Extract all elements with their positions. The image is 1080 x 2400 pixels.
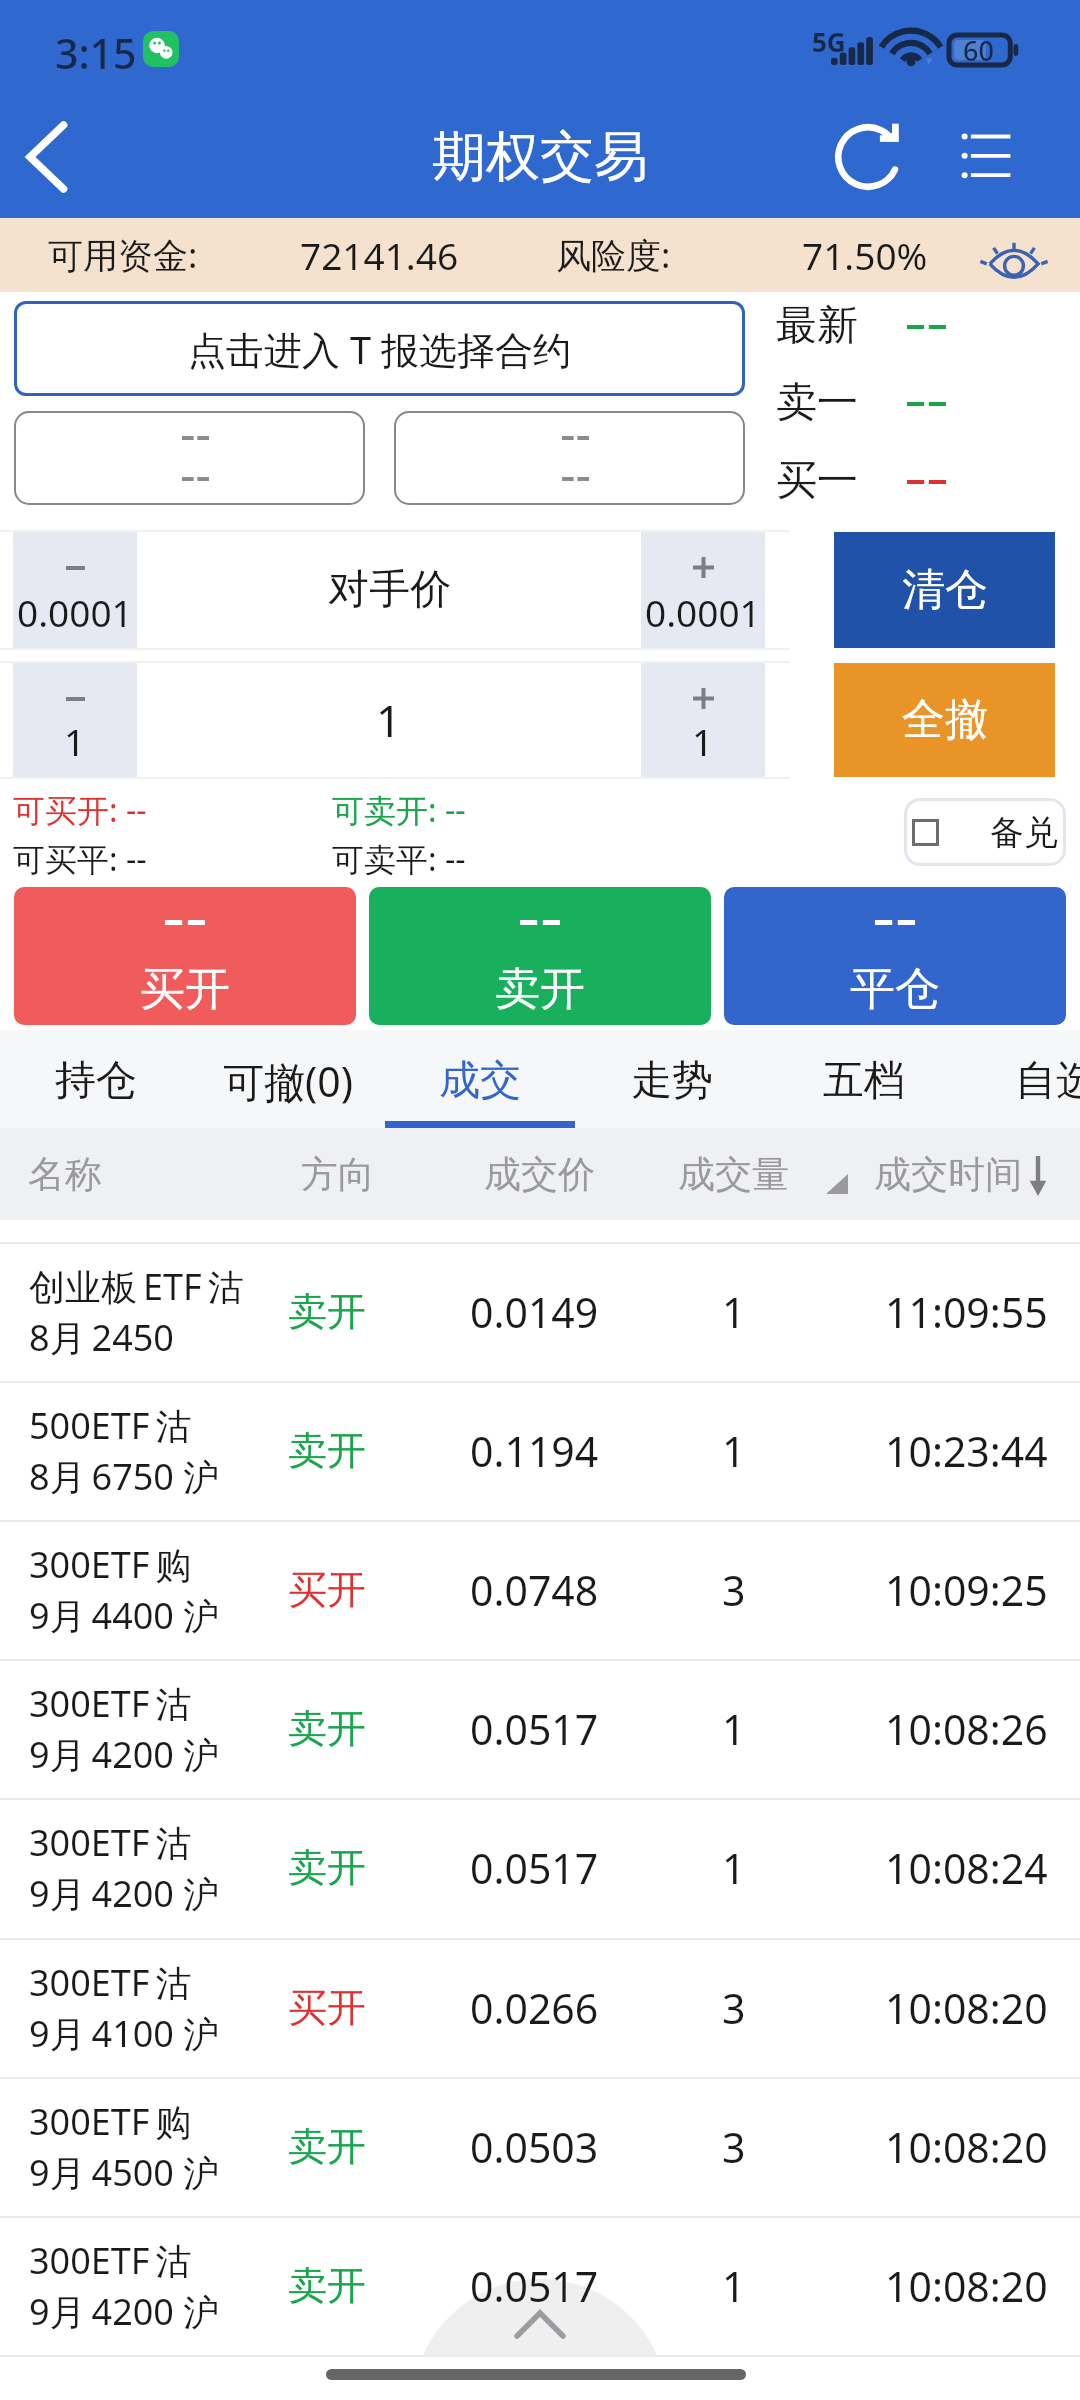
button[interactable]: 走势 [576, 1030, 768, 1128]
staticText: 走势 [631, 1055, 713, 1107]
staticText: 0.0266 [470, 1980, 599, 2036]
staticText: 9月 4400 沪 [29, 1591, 220, 1640]
button[interactable]: 自选 [960, 1030, 1080, 1128]
staticText: 全撤 [902, 693, 988, 747]
staticText: 300ETF 购 [29, 2097, 192, 2146]
staticText: 名称 [28, 1151, 102, 1198]
staticText: 买开 [140, 961, 230, 1018]
staticText: 创业板 ETF 沽 [29, 1262, 244, 1311]
button[interactable]: 卖开 [369, 887, 711, 1025]
staticText: 1 [722, 1701, 746, 1757]
button[interactable]: 300ETF 购 [0, 1520, 1080, 1659]
staticText: 卖开 [288, 1843, 366, 1892]
button[interactable]: 备兑 [904, 798, 1066, 866]
button[interactable] [14, 411, 365, 505]
staticText: 0.0001 [645, 587, 761, 637]
staticText: 成交时间 [874, 1151, 1022, 1198]
staticText: 对手价 [328, 564, 451, 616]
button[interactable]: 300ETF 沽 [0, 2216, 1080, 2355]
staticText: 0.0149 [470, 1284, 599, 1340]
button[interactable]: 五档 [768, 1030, 960, 1128]
button[interactable]: 300ETF 沽 [0, 1798, 1080, 1937]
staticText: 10:08:20 [885, 1980, 1048, 2036]
button[interactable]: 500ETF 沽 [0, 1381, 1080, 1520]
staticText: 可买开: -- [13, 788, 147, 832]
button[interactable]: Menu [936, 104, 1042, 210]
staticText: 可买平: -- [13, 837, 147, 881]
button[interactable]: Back [0, 104, 106, 210]
staticText: 500ETF 沽 [29, 1401, 192, 1450]
staticText: 10:08:20 [885, 2119, 1048, 2175]
staticText: 3 [722, 1562, 746, 1618]
staticText: 9月 4500 沪 [29, 2148, 220, 2197]
staticText: 1 [722, 2258, 746, 2314]
staticText: 60 [963, 32, 994, 62]
button[interactable]: 持仓 [0, 1030, 192, 1128]
button[interactable]: 平仓 [724, 887, 1066, 1025]
staticText: 9月 4200 沪 [29, 1869, 220, 1918]
staticText: 1 [64, 716, 86, 766]
staticText: 成交 [439, 1055, 521, 1107]
staticText: 300ETF 沽 [29, 1818, 192, 1867]
button[interactable]: 成交 [384, 1030, 576, 1128]
button[interactable]: 买开 [14, 887, 356, 1025]
button[interactable]: 300ETF 沽 [0, 1938, 1080, 2077]
button[interactable]: Decrease [13, 532, 137, 648]
button[interactable]: 300ETF 购 [0, 2077, 1080, 2216]
button[interactable]: 300ETF 沽 [0, 1659, 1080, 1798]
staticText: 3:15 [55, 25, 137, 81]
button[interactable]: 创业板 ETF 沽 [0, 1242, 1080, 1381]
staticText: 1 [722, 1284, 746, 1340]
staticText: 点击进入 T 报选择合约 [188, 323, 571, 375]
button[interactable]: 可撤(0) [192, 1030, 384, 1128]
staticText: 0.1194 [470, 1423, 599, 1479]
staticText: 最新 [776, 300, 858, 352]
staticText: 5G [812, 24, 846, 59]
staticText: 卖开 [288, 1704, 366, 1753]
staticText: 持仓 [55, 1055, 137, 1107]
staticText: 1 [722, 1423, 746, 1479]
staticText: 五档 [823, 1055, 905, 1107]
button[interactable]: Increase [641, 663, 765, 777]
button[interactable]: Decrease [13, 663, 137, 777]
staticText: 300ETF 沽 [29, 1679, 192, 1728]
staticText: 9月 4200 沪 [29, 1730, 220, 1779]
staticText: 9月 4100 沪 [29, 2009, 220, 2058]
button[interactable]: Increase [641, 532, 765, 648]
staticText: 72141.46 [300, 230, 459, 280]
staticText: 71.50% [802, 230, 928, 280]
staticText: 8月 6750 沪 [29, 1452, 220, 1501]
button[interactable]: 点击进入 T 报选择合约 [14, 301, 745, 396]
button[interactable]: Toggle visibility [972, 219, 1056, 291]
staticText: 期权交易 [432, 123, 648, 191]
button[interactable]: 清仓 [834, 532, 1055, 648]
staticText: 卖开 [288, 1287, 366, 1336]
staticText: 可用资金: [48, 231, 198, 279]
staticText: 3 [722, 1980, 746, 2036]
staticText: 可卖开: -- [332, 788, 466, 832]
staticText: 买开 [288, 1565, 366, 1614]
staticText: 0.0503 [470, 2119, 599, 2175]
button[interactable]: Refresh [816, 104, 920, 208]
staticText: 卖开 [288, 2122, 366, 2171]
staticText: 1 [376, 690, 402, 750]
staticText: 卖开 [495, 961, 585, 1018]
staticText: 卖开 [288, 2261, 366, 2310]
staticText: 可卖平: -- [332, 837, 466, 881]
staticText: 风险度: [556, 231, 671, 279]
staticText: 0.0517 [470, 1701, 599, 1757]
staticText: 300ETF 沽 [29, 1958, 192, 2007]
staticText: 成交量 [678, 1151, 789, 1198]
staticText: 买一 [776, 455, 858, 507]
staticText: 0.0001 [17, 587, 133, 637]
staticText: 成交价 [484, 1151, 595, 1198]
staticText: 可撤(0) [223, 1053, 354, 1109]
staticText: 10:08:20 [885, 2258, 1048, 2314]
staticText: 1 [692, 716, 714, 766]
staticText: 买开 [288, 1983, 366, 2032]
button[interactable] [394, 411, 745, 505]
button[interactable]: 全撤 [834, 663, 1055, 777]
staticText: 11:09:55 [885, 1284, 1048, 1340]
staticText: 10:23:44 [885, 1423, 1048, 1479]
staticText: 自选 [1015, 1055, 1080, 1107]
